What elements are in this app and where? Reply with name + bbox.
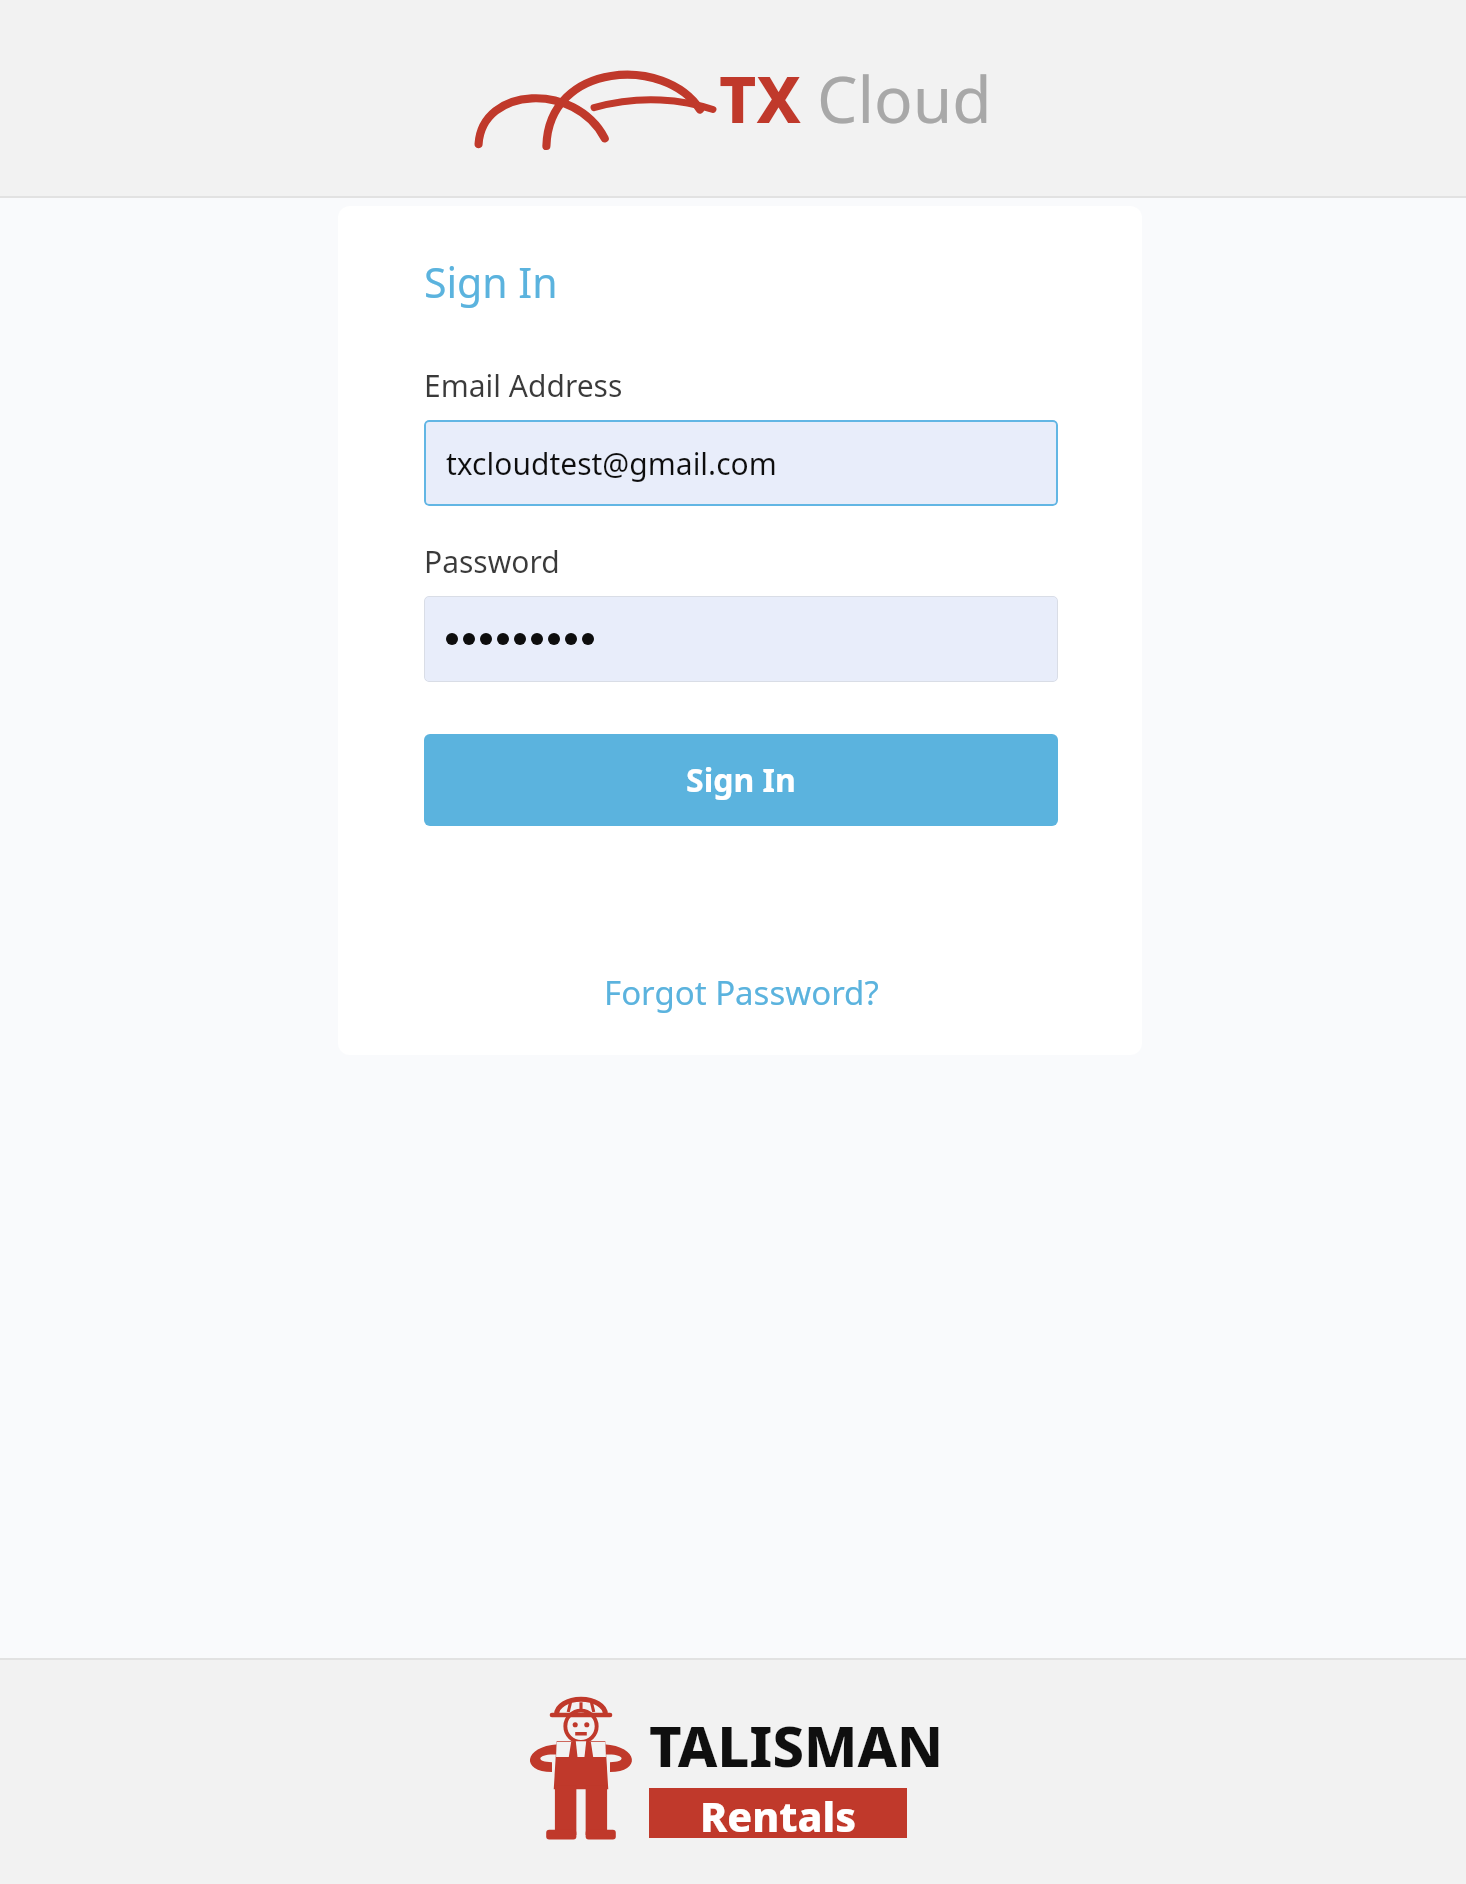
button[interactable] bbox=[424, 596, 1058, 682]
staticText: Forgot Password? bbox=[604, 970, 879, 1015]
button[interactable]: Sign In bbox=[424, 734, 1058, 826]
other: TX Cloud logo bbox=[475, 50, 713, 146]
staticText: TALISMAN bbox=[649, 1707, 944, 1783]
button[interactable]: Forgot Password? bbox=[594, 964, 889, 1021]
staticText: Sign In bbox=[686, 758, 796, 802]
staticText: TX bbox=[719, 55, 801, 142]
button[interactable]: txcloudtest@gmail.com bbox=[424, 420, 1058, 506]
staticText: Password bbox=[424, 541, 560, 582]
staticText: Email Address bbox=[424, 365, 623, 406]
staticText: txcloudtest@gmail.com bbox=[446, 443, 777, 484]
staticText: Sign In bbox=[424, 254, 558, 310]
other: Talisman Rentals mascot bbox=[523, 1697, 639, 1847]
staticText: Rentals bbox=[700, 1788, 857, 1838]
staticText: Cloud bbox=[817, 55, 992, 142]
